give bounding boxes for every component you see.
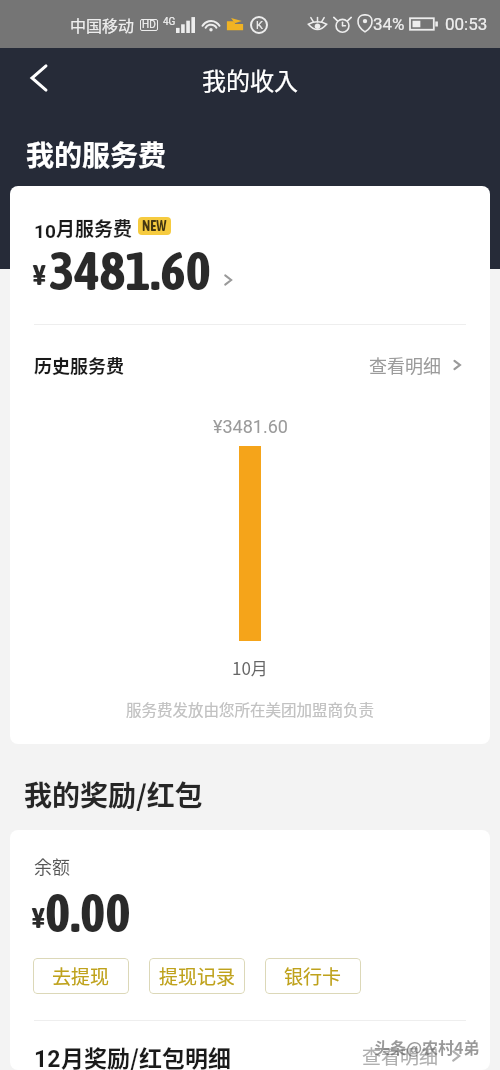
staticText: 00:53: [445, 14, 488, 34]
staticText: 我的收入: [202, 62, 298, 97]
staticText: HD: [142, 19, 156, 31]
staticText: 中国移动: [70, 13, 135, 36]
button[interactable]: ¥: [33, 240, 238, 302]
button[interactable]: Back: [14, 53, 64, 103]
staticText: 历史服务费: [34, 352, 124, 378]
staticText: ¥3481.60: [213, 416, 288, 437]
staticText: 去提现: [52, 962, 110, 990]
staticText: 34%: [373, 14, 405, 34]
staticText: 10月: [232, 655, 268, 680]
staticText: 银行卡: [284, 962, 342, 990]
staticText: 月奖励/红包明细: [61, 1040, 231, 1070]
staticText: 3481.60: [49, 240, 211, 302]
staticText: 查看明细: [362, 1042, 439, 1070]
staticText: 头条@农村4弟: [374, 1035, 480, 1058]
staticText: NEW: [142, 218, 167, 234]
staticText: ¥: [32, 902, 45, 934]
staticText: 4G: [163, 16, 176, 28]
button[interactable]: 去提现: [33, 958, 129, 994]
button[interactable]: 查看明细: [362, 1042, 466, 1070]
staticText: 我的服务费: [26, 134, 167, 175]
button[interactable]: 查看明细: [369, 352, 466, 378]
staticText: 月服务费: [56, 214, 133, 242]
staticText: 查看明细: [369, 352, 441, 378]
staticText: 提现记录: [159, 962, 236, 990]
staticText: 服务费发放由您所在美团加盟商负责: [126, 698, 375, 720]
staticText: ¥: [33, 259, 46, 291]
staticText: 0.00: [45, 882, 131, 944]
button[interactable]: 提现记录: [149, 958, 245, 994]
staticText: 余额: [34, 853, 70, 879]
staticText: K: [256, 19, 263, 32]
staticText: 我的奖励/红包: [24, 774, 203, 815]
button[interactable]: 银行卡: [265, 958, 361, 994]
staticText: 12: [34, 1046, 61, 1070]
staticText: 10: [34, 220, 56, 242]
